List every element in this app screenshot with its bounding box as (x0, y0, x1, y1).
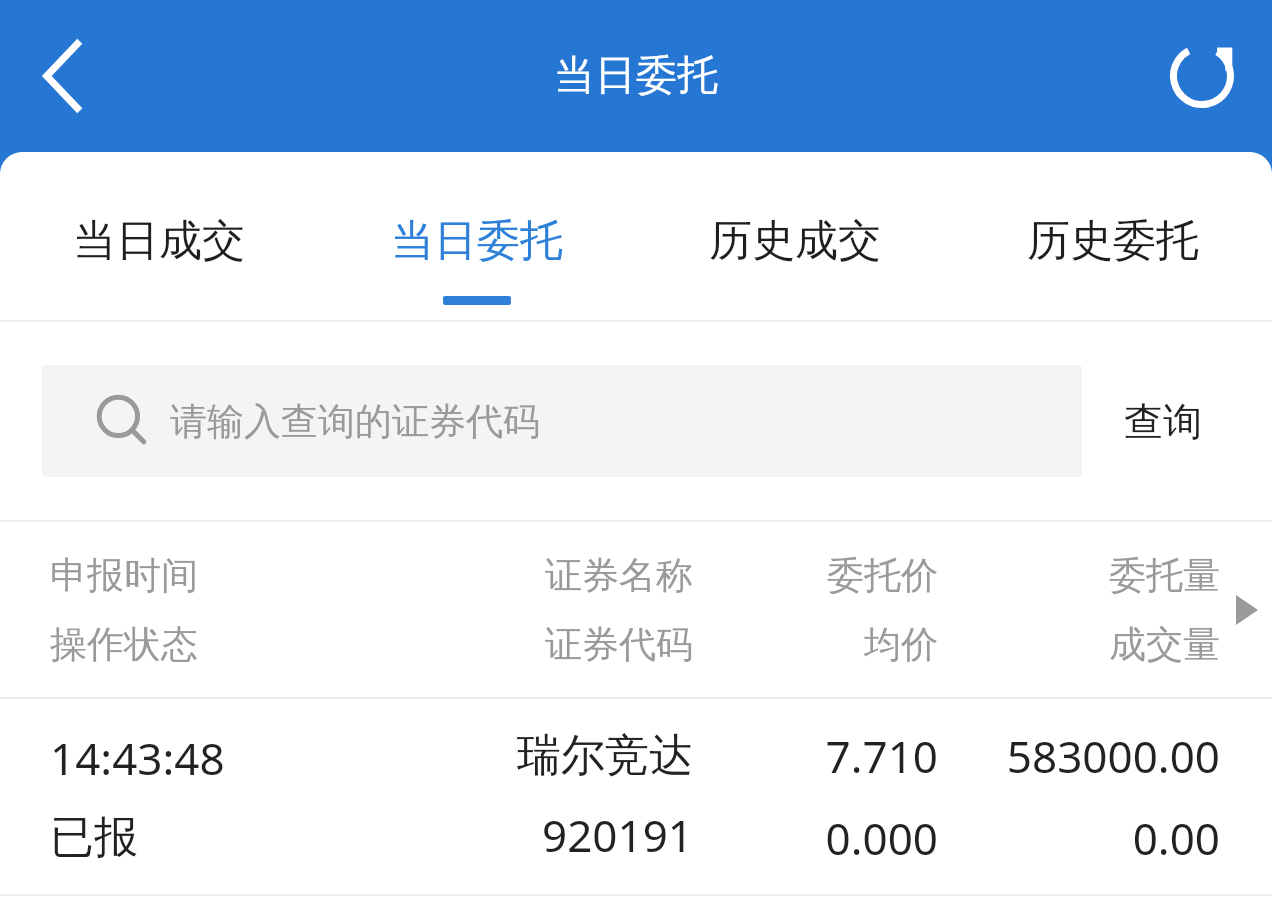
staticText: 当日成交 (73, 214, 245, 268)
button[interactable]: 请输入查询的证券代码 (42, 365, 1082, 477)
staticText: 已报 (50, 810, 138, 865)
button[interactable]: Back (8, 21, 118, 131)
staticText: 证券名称 (545, 552, 693, 599)
button[interactable]: 历史成交 (636, 152, 954, 320)
staticText: 成交量 (1109, 621, 1220, 668)
staticText: 操作状态 (50, 621, 198, 668)
staticText: 申报时间 (50, 552, 198, 599)
button[interactable]: 14:43:48 (0, 699, 1272, 894)
staticText: 历史成交 (709, 214, 881, 268)
button[interactable]: 历史委托 (954, 152, 1272, 320)
staticText: 7.710 (825, 726, 938, 786)
staticText: 0.00 (1132, 808, 1220, 868)
staticText: 均价 (864, 621, 938, 668)
staticText: 0.000 (825, 808, 938, 868)
button[interactable]: Refresh (1150, 24, 1254, 128)
staticText: 请输入查询的证券代码 (170, 398, 540, 445)
staticText: 920191 (541, 805, 693, 865)
staticText: 查询 (1124, 397, 1202, 446)
staticText: 委托量 (1109, 552, 1220, 599)
staticText: 历史委托 (1027, 214, 1199, 268)
staticText: 583000.00 (1006, 726, 1220, 786)
staticText: 瑞尔竞达 (517, 728, 693, 783)
staticText: 当日委托 (391, 214, 563, 268)
staticText: 14:43:48 (50, 728, 225, 788)
button[interactable]: 当日委托 (318, 152, 636, 320)
button[interactable]: 当日成交 (0, 152, 318, 320)
button[interactable]: 查询 (1082, 365, 1244, 477)
staticText: 当日委托 (554, 50, 718, 102)
staticText: 委托价 (827, 552, 938, 599)
staticText: 证券代码 (545, 621, 693, 668)
